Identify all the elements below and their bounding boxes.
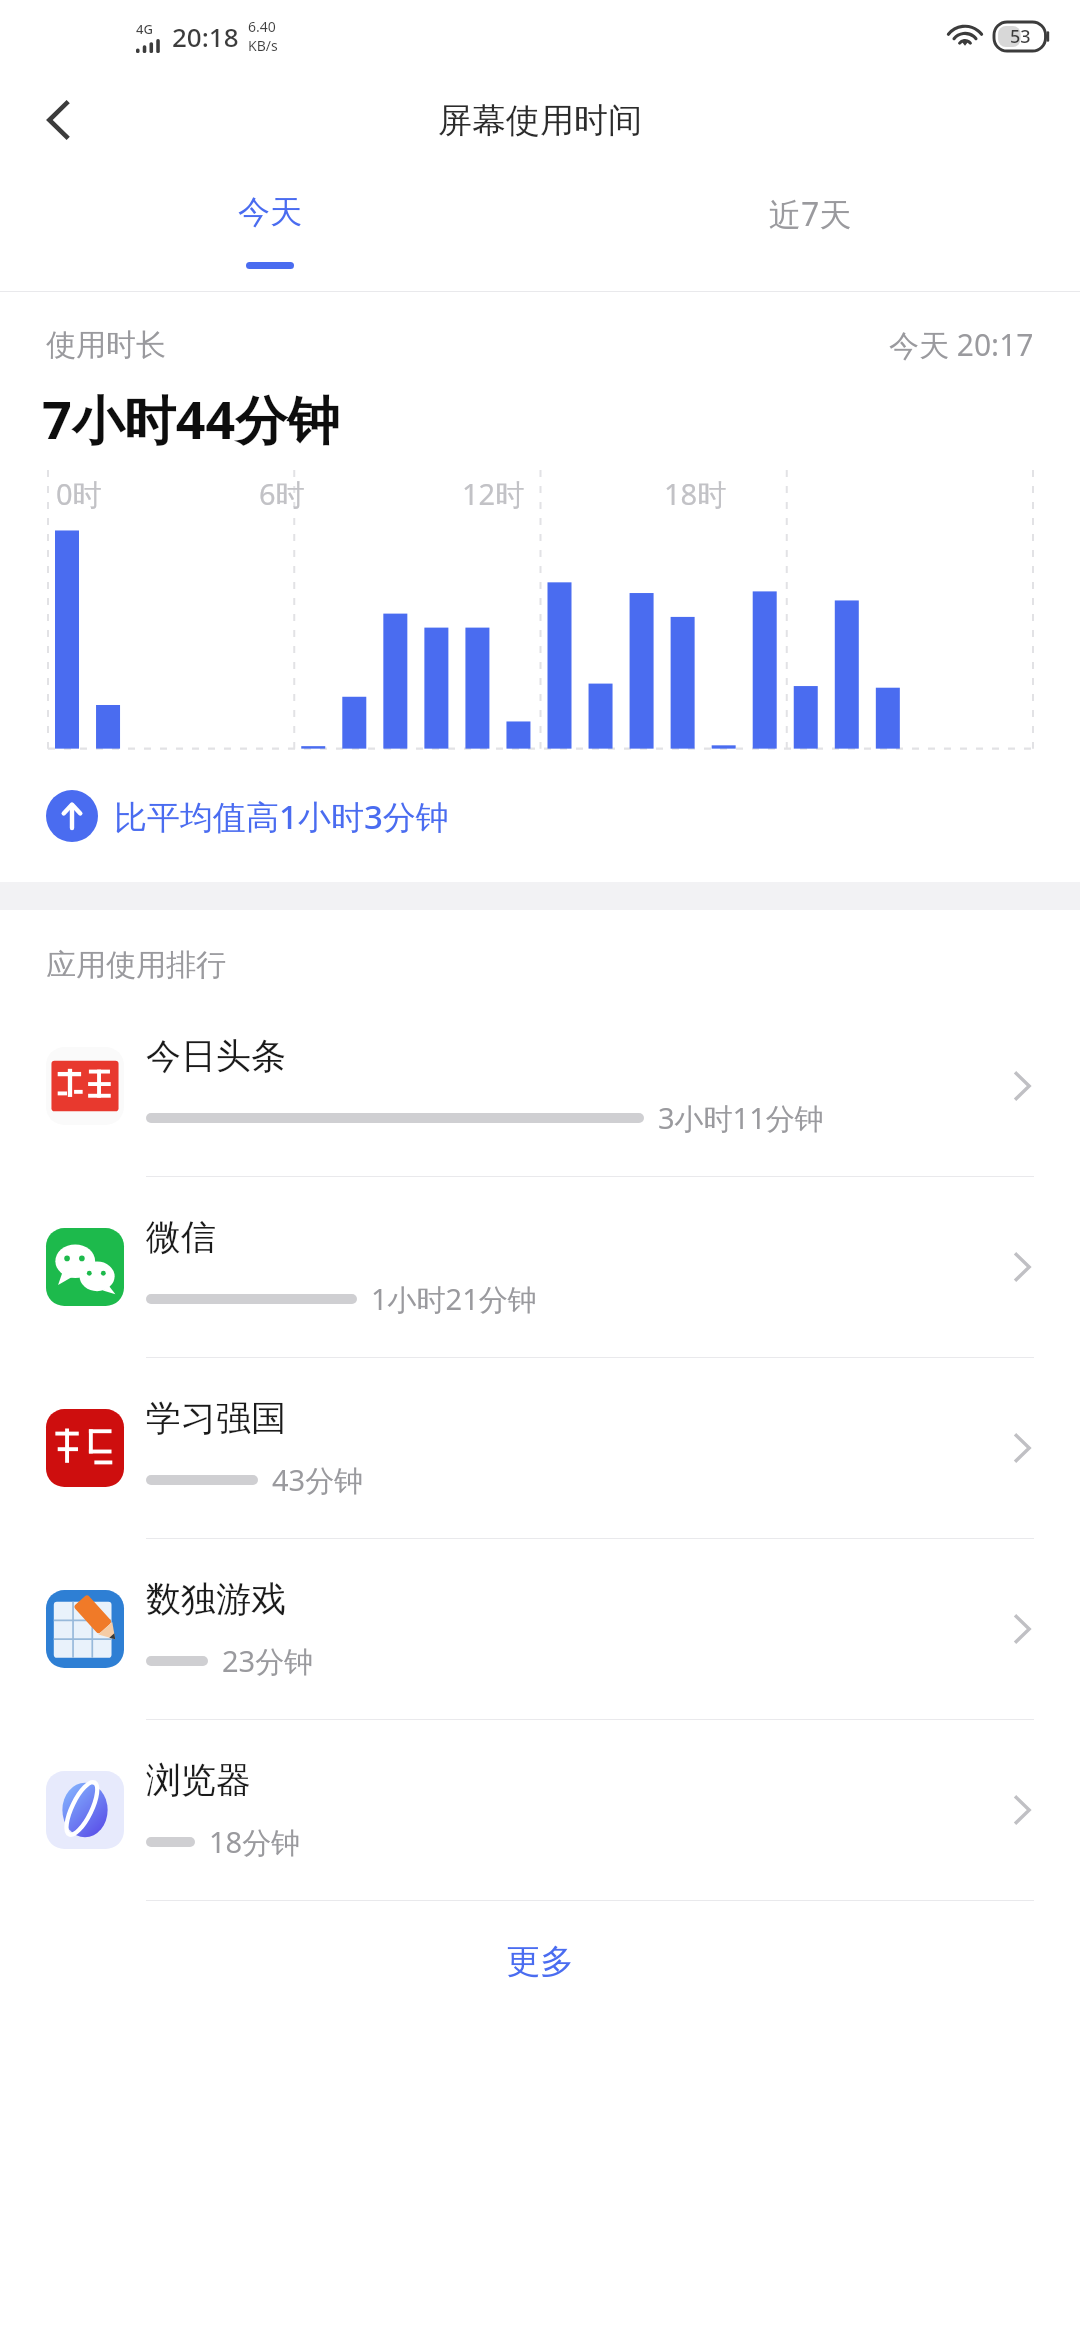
staticText: KB/s [248, 36, 278, 55]
button[interactable]: 今天 [0, 168, 540, 292]
staticText: 53 [1010, 24, 1031, 49]
staticText: 近7天 [769, 192, 852, 236]
button[interactable]: 数独游戏 [0, 1539, 1080, 1719]
staticText: 微信 [146, 1215, 216, 1259]
button[interactable]: 近7天 [540, 168, 1080, 292]
staticText: 20:18 [172, 19, 239, 54]
staticText: 数独游戏 [146, 1577, 286, 1621]
staticText: 18分钟 [209, 1822, 301, 1862]
staticText: 43分钟 [272, 1460, 364, 1500]
staticText: 比平均值高1小时3分钟 [114, 794, 449, 839]
button[interactable]: 比平均值高1小时3分钟 [46, 790, 1034, 842]
staticText: 3小时11分钟 [658, 1098, 824, 1138]
staticText: 今天 20:17 [889, 324, 1034, 365]
staticText: 使用时长 [46, 326, 166, 364]
button[interactable]: 浏览器 [0, 1720, 1080, 1900]
staticText: 学习强国 [146, 1396, 286, 1440]
button[interactable]: Back [20, 81, 98, 159]
staticText: 0时 [56, 474, 102, 514]
staticText: 今天 [238, 192, 302, 232]
staticText: 23分钟 [222, 1641, 314, 1681]
staticText: 更多 [506, 1940, 574, 1983]
staticText: 7小时44分钟 [42, 383, 340, 454]
button[interactable]: 更多 [0, 1901, 1080, 2021]
staticText: 6时 [259, 474, 305, 514]
staticText: 12时 [462, 474, 525, 514]
staticText: 6.40 [248, 17, 276, 36]
button[interactable]: 微信 [0, 1177, 1080, 1357]
staticText: 屏幕使用时间 [438, 99, 642, 142]
button[interactable]: 今日头条 [0, 996, 1080, 1176]
staticText: 今日头条 [146, 1034, 286, 1078]
button[interactable]: 学习强国 [0, 1358, 1080, 1538]
staticText: 浏览器 [146, 1758, 251, 1802]
staticText: 18时 [664, 474, 727, 514]
staticText: 应用使用排行 [46, 946, 226, 984]
staticText: 1小时21分钟 [371, 1279, 537, 1319]
staticText: 4G [136, 20, 153, 38]
